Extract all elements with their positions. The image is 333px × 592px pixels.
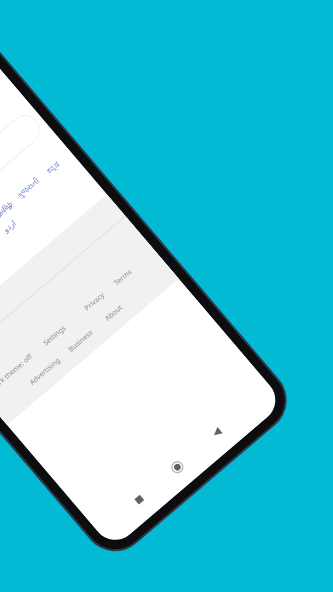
button[interactable]: Back	[204, 420, 230, 445]
button[interactable]: ಕನ್ನಡ	[45, 160, 62, 175]
button[interactable]	[0, 109, 46, 270]
button[interactable]: About	[103, 303, 125, 323]
button[interactable]: اردو	[1, 218, 18, 234]
button[interactable]: Dark theme: off	[0, 352, 35, 393]
button[interactable]: Privacy	[82, 290, 107, 313]
button[interactable]: Recents	[126, 487, 151, 512]
button[interactable]: Business	[66, 327, 96, 355]
button[interactable]: Terms	[112, 267, 135, 288]
button[interactable]: Advertising	[28, 355, 63, 388]
button[interactable]: தமிழ்	[0, 200, 14, 218]
button[interactable]: Settings	[41, 323, 68, 348]
button[interactable]: ગુજરાતી	[15, 176, 42, 201]
button[interactable]: Home	[164, 454, 189, 480]
